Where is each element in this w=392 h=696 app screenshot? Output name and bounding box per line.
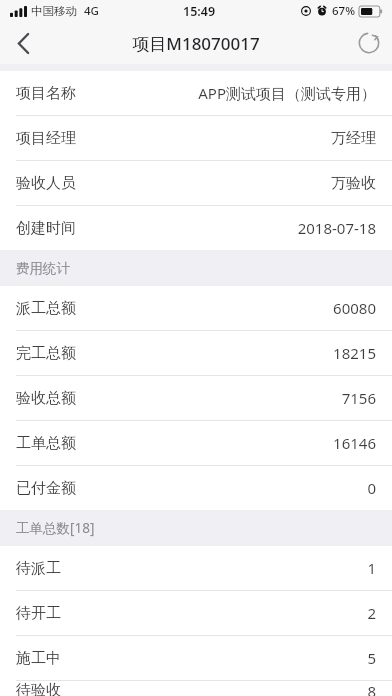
staticText: 工单总数[18] <box>16 519 95 537</box>
staticText: 中国移动 <box>31 4 77 18</box>
button[interactable]: Refresh <box>346 22 392 64</box>
button[interactable]: 创建时间 <box>0 206 392 250</box>
staticText: 4G <box>84 3 99 19</box>
staticText: 2018-07-18 <box>297 218 376 238</box>
button[interactable]: 施工中 <box>0 636 392 681</box>
staticText: 验收人员 <box>16 174 76 193</box>
staticText: 创建时间 <box>16 219 76 238</box>
staticText: 项目名称 <box>16 84 76 103</box>
staticText: 待派工 <box>16 559 61 578</box>
staticText: 2 <box>367 603 376 623</box>
staticText: 1 <box>367 558 376 578</box>
staticText: 8 <box>367 681 376 696</box>
staticText: 项目经理 <box>16 129 76 148</box>
button[interactable]: Back <box>0 22 46 64</box>
button[interactable]: 待验收 <box>0 681 392 696</box>
staticText: APP测试项目（测试专用） <box>198 83 376 103</box>
staticText: 万验收 <box>331 174 376 193</box>
button[interactable]: 待派工 <box>0 546 392 591</box>
staticText: 项目M18070017 <box>132 32 260 55</box>
staticText: 待开工 <box>16 604 61 623</box>
staticText: 万经理 <box>331 129 376 148</box>
button[interactable]: 验收总额 <box>0 376 392 421</box>
staticText: 派工总额 <box>16 299 76 318</box>
button[interactable]: 待开工 <box>0 591 392 636</box>
staticText: 0 <box>367 478 376 498</box>
button[interactable]: 已付金额 <box>0 466 392 510</box>
staticText: 16146 <box>333 433 376 453</box>
staticText: 验收总额 <box>16 389 76 408</box>
staticText: 67% <box>332 3 355 19</box>
button[interactable]: 验收人员 <box>0 161 392 206</box>
button[interactable]: 完工总额 <box>0 331 392 376</box>
staticText: 待验收 <box>16 681 61 696</box>
staticText: 18215 <box>333 343 376 363</box>
button[interactable]: 项目经理 <box>0 116 392 161</box>
staticText: 15:49 <box>183 3 216 20</box>
staticText: 完工总额 <box>16 344 76 363</box>
staticText: 60080 <box>333 298 376 318</box>
button[interactable]: 项目名称 <box>0 71 392 116</box>
staticText: 施工中 <box>16 649 61 668</box>
button[interactable]: 派工总额 <box>0 286 392 331</box>
button[interactable]: 工单总额 <box>0 421 392 466</box>
staticText: 已付金额 <box>16 479 76 498</box>
staticText: 5 <box>367 648 376 668</box>
staticText: 7156 <box>341 388 376 408</box>
staticText: 费用统计 <box>16 260 70 277</box>
staticText: 工单总额 <box>16 434 76 453</box>
